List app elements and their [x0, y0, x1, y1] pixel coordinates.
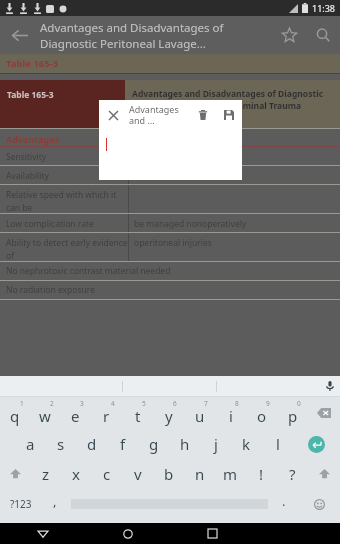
- staticText: 5: [142, 399, 146, 408]
- staticText: 2: [50, 399, 54, 408]
- button[interactable]: !: [246, 459, 277, 489]
- button[interactable]: h: [169, 429, 200, 459]
- button[interactable]: 5: [122, 397, 153, 429]
- staticText: l: [276, 434, 280, 454]
- staticText: ?: [289, 464, 296, 484]
- button[interactable]: Close: [99, 101, 127, 129]
- staticText: be managed nonoperatively: [134, 218, 247, 230]
- staticText: r: [103, 406, 110, 426]
- staticText: q: [10, 406, 20, 426]
- staticText: Relative speed with which it can be perf…: [6, 189, 128, 213]
- staticText: No nephrotoxic contrast material needed: [6, 265, 171, 277]
- button[interactable]: z: [31, 459, 61, 489]
- staticText: !: [259, 464, 264, 484]
- button[interactable]: Recent apps: [170, 523, 255, 544]
- staticText: Low complication rate: [6, 218, 94, 230]
- button[interactable]: Voice input: [320, 376, 340, 396]
- button[interactable]: 0: [277, 397, 308, 429]
- staticText: a: [26, 434, 35, 454]
- staticText: k: [242, 434, 251, 454]
- staticText: g: [149, 434, 159, 454]
- staticText: d: [87, 434, 97, 454]
- staticText: Table 165-3: [6, 57, 59, 70]
- staticText: 0: [297, 399, 301, 408]
- staticText: operitoneal injuries: [134, 237, 212, 249]
- button[interactable]: 3: [60, 397, 91, 429]
- staticText: Ability to detect early evidence of bowe…: [6, 237, 128, 261]
- button[interactable]: x: [61, 459, 91, 489]
- button[interactable]: Bookmark: [272, 18, 306, 52]
- button[interactable]: j: [200, 429, 231, 459]
- staticText: e: [71, 406, 80, 426]
- button[interactable]: Shift: [308, 459, 340, 489]
- button[interactable]: Search: [306, 18, 340, 52]
- button[interactable]: Delete: [190, 102, 216, 128]
- button[interactable]: 7: [184, 397, 215, 429]
- button[interactable]: [106, 134, 242, 174]
- button[interactable]: v: [122, 459, 153, 489]
- button[interactable]: a: [15, 429, 45, 459]
- staticText: Table 165-3: [7, 89, 54, 101]
- button[interactable]: .: [270, 489, 298, 519]
- staticText: Advantages and …: [129, 103, 190, 127]
- staticText: v: [134, 464, 142, 484]
- button[interactable]: 4: [91, 397, 122, 429]
- staticText: x: [72, 464, 80, 484]
- button[interactable]: k: [231, 429, 262, 459]
- button[interactable]: g: [138, 429, 169, 459]
- button[interactable]: f: [107, 429, 138, 459]
- staticText: u: [195, 406, 205, 426]
- staticText: .: [282, 492, 286, 510]
- staticText: 8: [235, 399, 239, 408]
- staticText: 11:38: [312, 2, 336, 14]
- button[interactable]: b: [153, 459, 184, 489]
- staticText: 3: [80, 399, 84, 408]
- staticText: w: [39, 406, 51, 426]
- button[interactable]: n: [184, 459, 215, 489]
- button[interactable]: Save: [216, 102, 242, 128]
- button[interactable]: 8: [215, 397, 246, 429]
- staticText: n: [195, 464, 205, 484]
- staticText: Advantages and Disadvantages of Diagnost…: [40, 20, 266, 51]
- button[interactable]: Enter: [293, 429, 340, 459]
- staticText: y: [165, 406, 173, 426]
- staticText: Sensitivity: [6, 151, 47, 163]
- button[interactable]: ,: [41, 489, 69, 519]
- button[interactable]: Emoji: [298, 489, 340, 519]
- button[interactable]: Backspace: [308, 397, 340, 429]
- staticText: b: [164, 464, 174, 484]
- staticText: f: [120, 434, 126, 454]
- button[interactable]: Shift: [0, 459, 31, 489]
- button[interactable]: Back: [0, 523, 85, 544]
- button[interactable]: 2: [30, 397, 60, 429]
- button[interactable]: 6: [153, 397, 184, 429]
- staticText: i: [229, 406, 233, 426]
- button[interactable]: s: [45, 429, 76, 459]
- staticText: z: [42, 464, 50, 484]
- button[interactable]: ?123: [0, 489, 41, 519]
- button[interactable]: c: [91, 459, 122, 489]
- staticText: 9: [266, 399, 270, 408]
- staticText: ?123: [10, 497, 32, 511]
- button[interactable]: 9: [246, 397, 277, 429]
- staticText: p: [288, 406, 298, 426]
- staticText: Availability: [6, 170, 49, 182]
- staticText: 4: [111, 399, 115, 408]
- button[interactable]: ?: [277, 459, 308, 489]
- staticText: m: [223, 464, 238, 484]
- staticText: j: [214, 434, 218, 454]
- button[interactable]: Home: [85, 523, 170, 544]
- button[interactable]: l: [262, 429, 293, 459]
- staticText: o: [257, 406, 267, 426]
- staticText: ,: [53, 492, 57, 510]
- button[interactable]: d: [76, 429, 107, 459]
- staticText: 1: [20, 399, 24, 408]
- button[interactable]: 1: [0, 397, 30, 429]
- staticText: c: [103, 464, 111, 484]
- button[interactable]: m: [215, 459, 246, 489]
- staticText: t: [135, 406, 141, 426]
- button[interactable]: Back: [0, 16, 38, 54]
